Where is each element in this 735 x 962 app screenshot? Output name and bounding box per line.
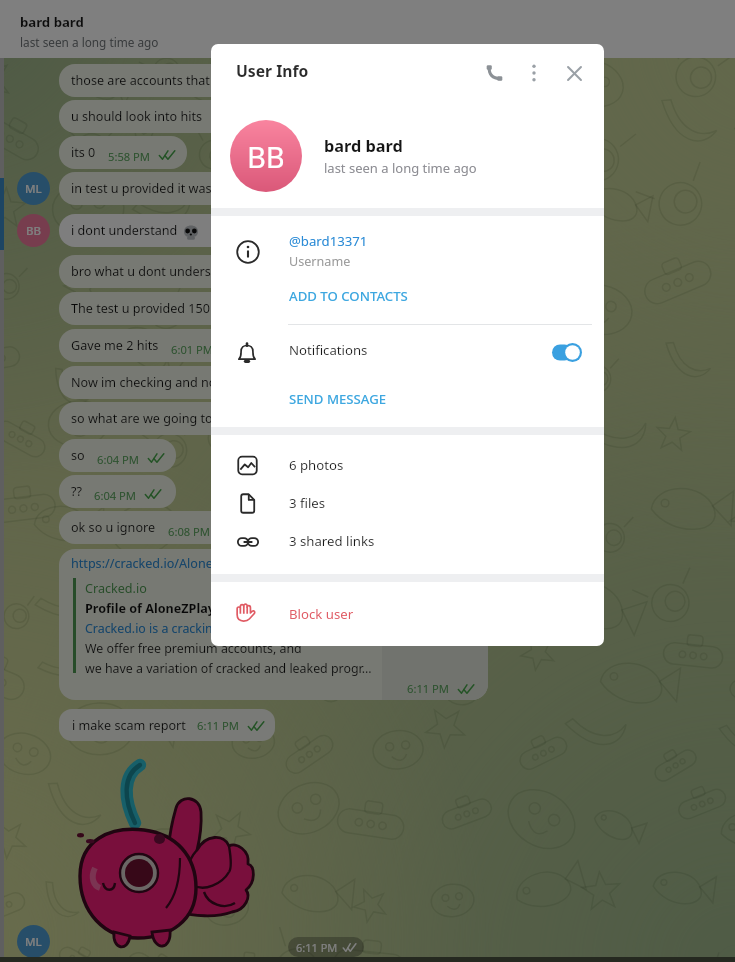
staticText: ML [25, 934, 42, 950]
staticText: Gave me 2 hits [71, 337, 159, 354]
button[interactable]: its 0 [59, 136, 187, 169]
staticText: ok so u ignore [71, 519, 156, 536]
button[interactable]: Notifications toggle [552, 343, 582, 362]
button[interactable]: https://cracked.io/AloneZPlayer [59, 549, 488, 700]
button[interactable]: Block user [211, 592, 604, 646]
staticText: 6:11 PM [197, 718, 240, 733]
staticText: 5:58 PM [108, 149, 151, 164]
staticText: We offer free premium accounts, and [85, 640, 302, 657]
button[interactable]: i dont understand [59, 214, 359, 247]
staticText: Notifications [289, 341, 368, 359]
button[interactable]: @bard13371 [211, 216, 604, 278]
staticText: ?? [71, 483, 82, 500]
staticText: 6:08 PM [168, 524, 211, 539]
staticText: 6:04 PM [97, 452, 140, 467]
staticText: Cracked.io is a cracking forum where [85, 620, 300, 637]
button[interactable]: BB [211, 105, 604, 207]
button[interactable]: More options [514, 53, 554, 93]
staticText: BB [247, 137, 285, 176]
staticText: Cracked.io [85, 580, 147, 597]
staticText: in test u provided it was [71, 180, 212, 197]
staticText: @bard13371 [289, 232, 368, 250]
button[interactable]: SEND MESSAGE [211, 375, 604, 423]
staticText: last seen a long time ago [324, 159, 477, 177]
staticText: 6:01 PM [171, 342, 214, 357]
staticText: 6:11 PM [407, 681, 450, 696]
staticText: i dont understand [71, 222, 178, 239]
staticText: 6:11 PM [296, 940, 338, 955]
staticText: 3 shared links [289, 532, 375, 550]
staticText: i make scam report [72, 717, 186, 734]
button[interactable]: 6 photos [211, 446, 604, 484]
button[interactable]: so [59, 439, 176, 472]
button[interactable]: Call [474, 53, 514, 93]
staticText: those are accounts that u [71, 72, 221, 89]
staticText: Block user [289, 605, 354, 623]
staticText: ML [25, 181, 42, 197]
staticText: 6 photos [289, 456, 344, 474]
button[interactable]: ?? [59, 475, 176, 508]
staticText: Now im checking and no [71, 374, 217, 391]
staticText: u should look into hits [71, 108, 203, 125]
button[interactable]: i make scam report [59, 709, 275, 741]
staticText: last seen a long time ago [20, 34, 159, 50]
button[interactable]: 3 shared links [211, 522, 604, 560]
staticText: The test u provided 150 [71, 300, 210, 317]
staticText: User Info [236, 60, 309, 81]
staticText: Profile of AloneZPlayer [85, 600, 229, 617]
button[interactable]: Now im checking and no [59, 366, 359, 399]
staticText: Username [289, 253, 351, 270]
staticText: SEND MESSAGE [289, 390, 387, 408]
staticText: BB [26, 223, 42, 239]
button[interactable]: Notifications [211, 325, 604, 373]
button[interactable]: The test u provided 150 [59, 292, 359, 325]
staticText: https://cracked.io/AloneZPlayer [71, 555, 257, 572]
staticText: so what are we going to [71, 410, 213, 427]
button[interactable]: ok so u ignore [59, 511, 297, 544]
button[interactable]: bro what u dont unders [59, 255, 359, 288]
staticText: its 0 [71, 144, 96, 161]
button[interactable]: Gave me 2 hits [59, 329, 359, 362]
button[interactable]: in test u provided it was [59, 172, 359, 205]
button[interactable]: ADD TO CONTACTS [211, 273, 604, 319]
staticText: 3 files [289, 494, 326, 512]
staticText: bard bard [324, 135, 403, 157]
button[interactable]: so what are we going to [59, 402, 359, 435]
button[interactable]: 3 files [211, 484, 604, 522]
staticText: ADD TO CONTACTS [289, 287, 408, 305]
button[interactable]: those are accounts that u [59, 64, 359, 97]
staticText: we have a variation of cracked and leake… [85, 660, 372, 677]
button[interactable]: Close [554, 53, 594, 93]
staticText: bard bard [20, 13, 84, 31]
staticText: so [71, 447, 85, 464]
button[interactable]: u should look into hits [59, 100, 359, 133]
staticText: 6:04 PM [94, 488, 137, 503]
staticText: bro what u dont unders [71, 263, 211, 280]
